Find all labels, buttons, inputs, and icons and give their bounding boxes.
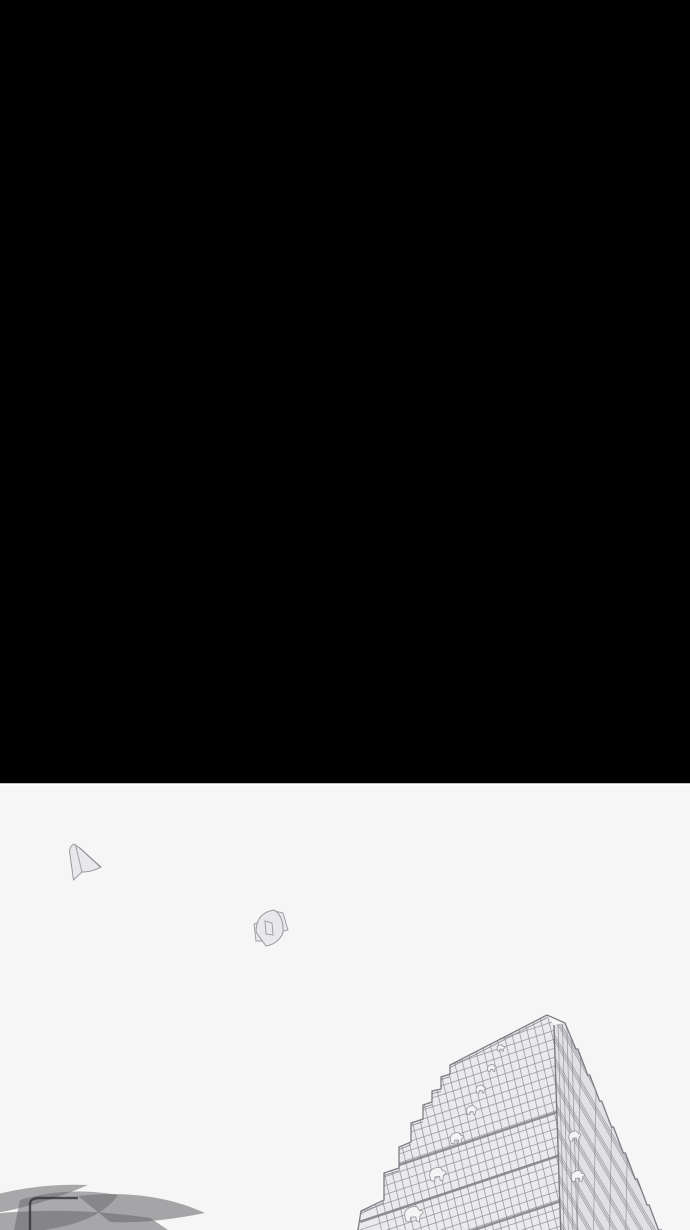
button[interactable]: Photo: glass tower with gulls xyxy=(0,0,690,1230)
